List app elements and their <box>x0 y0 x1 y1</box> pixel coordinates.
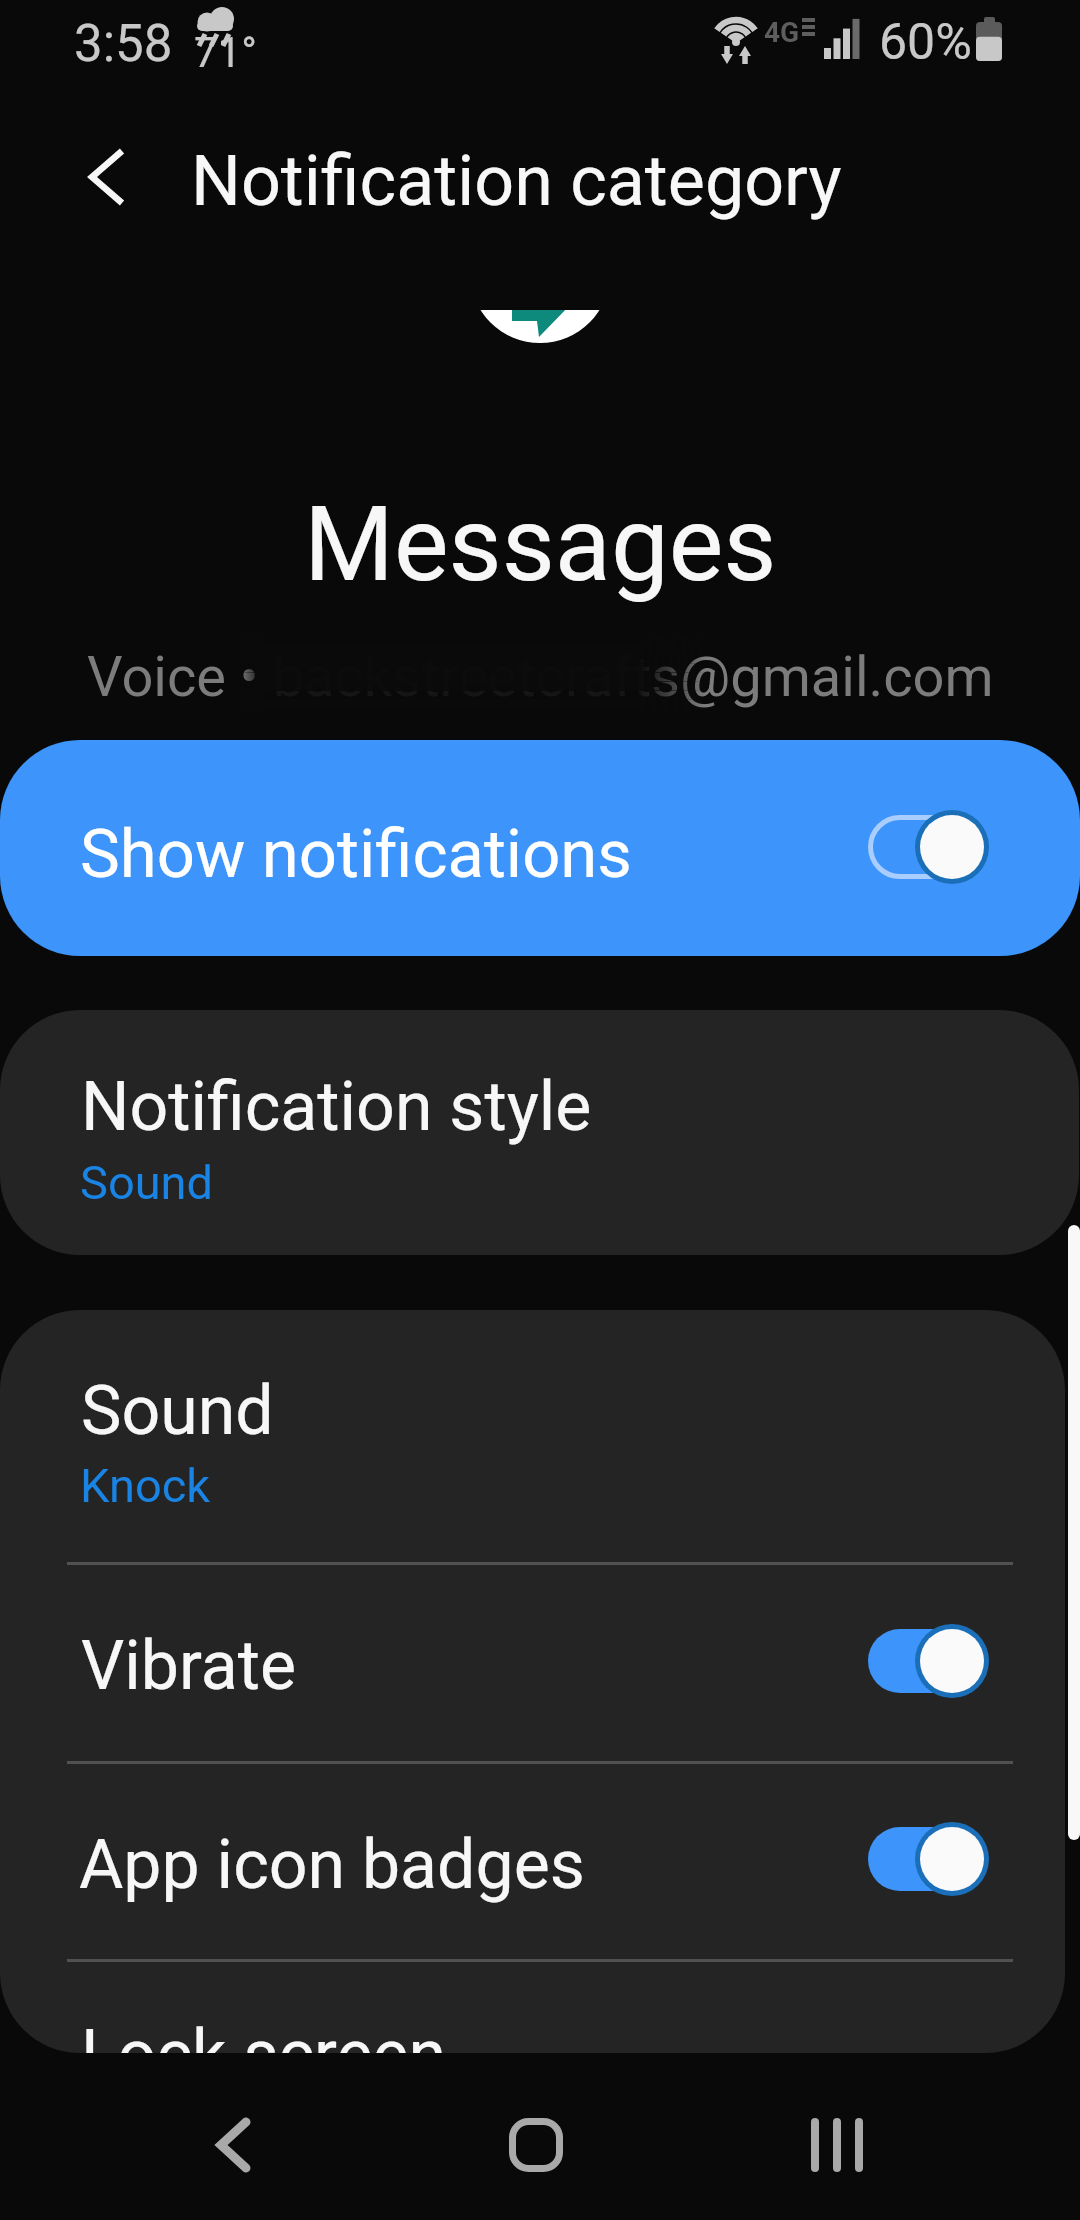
button[interactable]: Notification style <box>0 1010 1079 1255</box>
button[interactable]: Vibrate <box>0 1562 1065 1761</box>
staticText: Lock screen <box>81 2015 447 2053</box>
button[interactable]: Sound <box>0 1310 1065 1562</box>
button[interactable]: Navigate up <box>48 112 166 242</box>
button[interactable]: Back <box>143 2061 323 2220</box>
staticText: 4G <box>764 16 800 49</box>
staticText: Notification style <box>81 1067 592 1147</box>
staticText: App icon badges <box>79 1825 585 1905</box>
staticText: Show notifications <box>80 815 632 894</box>
staticText: Voice • backstreetcrafts@gmail.com <box>87 644 994 710</box>
staticText: Vibrate <box>81 1626 297 1706</box>
staticText: Sound <box>81 1371 274 1451</box>
button[interactable]: Home <box>446 2061 626 2220</box>
button[interactable]: Show notifications <box>0 740 1080 956</box>
button[interactable]: App icon badges <box>0 1761 1065 1959</box>
staticText: 3:58 <box>74 14 173 74</box>
staticText: 60% <box>879 13 972 72</box>
staticText: Messages <box>304 484 777 605</box>
staticText: Notification category <box>191 140 842 222</box>
button[interactable]: Recent apps <box>747 2061 927 2220</box>
staticText: Knock <box>80 1458 211 1513</box>
staticText: Sound <box>80 1155 214 1210</box>
staticText: 71° <box>194 28 257 77</box>
button[interactable]: Lock screen <box>0 1959 1065 2053</box>
